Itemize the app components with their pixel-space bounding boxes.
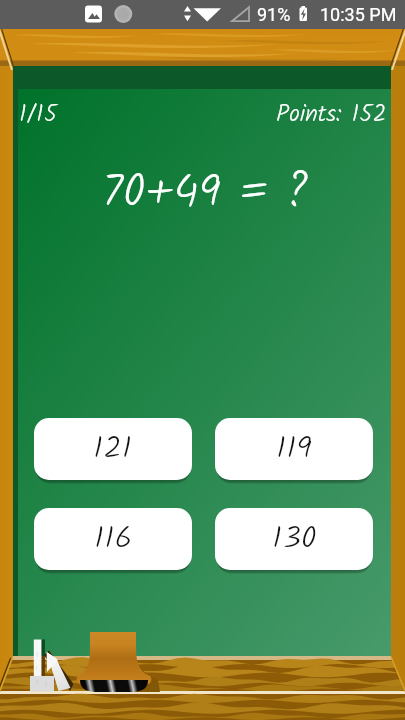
staticText: 70+49 = ?: [102, 157, 308, 230]
button[interactable]: 1/15: [19, 95, 58, 133]
button[interactable]: Points: 152: [276, 95, 387, 133]
button[interactable]: 116: [34, 508, 192, 570]
staticText: 116: [94, 514, 133, 565]
staticText: 91%: [257, 4, 291, 25]
button[interactable]: 119: [215, 418, 373, 480]
staticText: Points: 152: [276, 95, 387, 133]
staticText: 1/15: [19, 95, 58, 133]
staticText: 130: [272, 514, 317, 565]
button[interactable]: 130: [215, 508, 373, 570]
button[interactable]: 121: [34, 418, 192, 480]
staticText: 10:35 PM: [320, 4, 397, 25]
staticText: 121: [93, 424, 133, 475]
staticText: 119: [276, 424, 312, 475]
